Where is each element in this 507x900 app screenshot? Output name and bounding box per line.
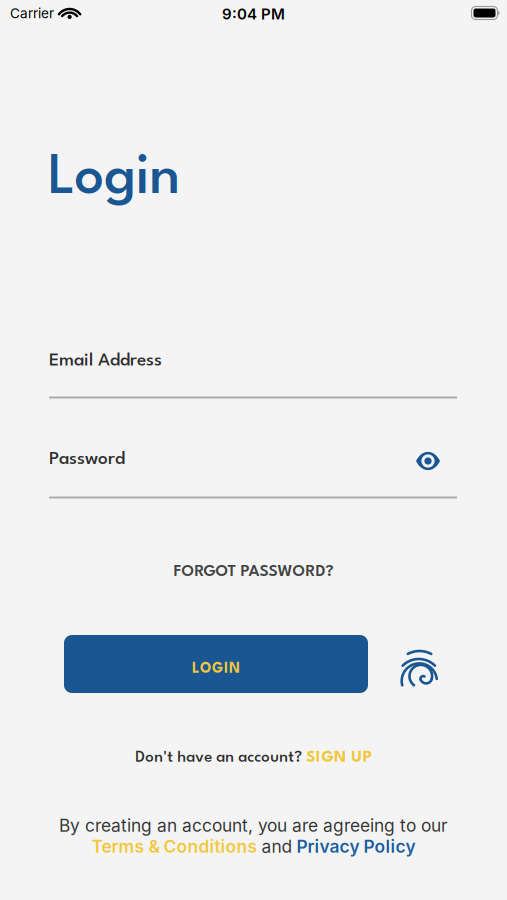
button[interactable]: L O G I N: [64, 635, 368, 693]
button[interactable]: Terms & Conditions: [91, 836, 257, 857]
staticText: Don't have an account?: [135, 750, 302, 765]
staticText: FORGOT PASSWORD?: [173, 564, 333, 580]
staticText: Login: [48, 152, 180, 206]
staticText: Password: [49, 450, 125, 468]
staticText: SIGN UP: [306, 750, 372, 765]
staticText: Email Address: [49, 352, 162, 370]
button[interactable]: Privacy Policy: [296, 836, 415, 857]
staticText: Carrier: [10, 5, 54, 21]
button[interactable]: Password: [49, 450, 457, 498]
button[interactable]: SIGN UP: [306, 750, 372, 765]
staticText: L O G I N: [192, 662, 240, 676]
staticText: Privacy Policy: [296, 836, 415, 857]
button[interactable]: Login with fingerprint: [397, 647, 439, 695]
staticText: 9:04 PM: [222, 5, 285, 23]
button[interactable]: FORGOT PASSWORD?: [173, 564, 333, 580]
staticText: By creating an account, you are agreeing…: [59, 815, 448, 836]
button[interactable]: Email Address: [49, 352, 457, 398]
button[interactable]: Show password: [416, 452, 440, 470]
staticText: Terms & Conditions: [91, 836, 257, 857]
staticText: and: [261, 836, 292, 857]
